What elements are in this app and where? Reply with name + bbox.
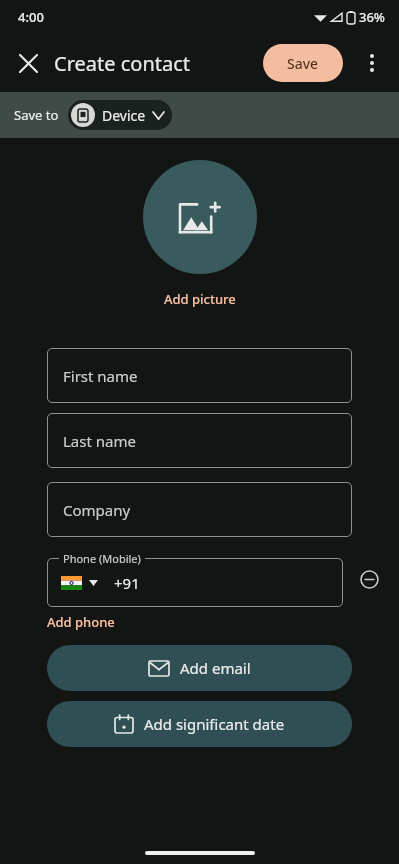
staticText: Add significant date bbox=[144, 714, 285, 734]
staticText: Create contact bbox=[54, 50, 191, 77]
staticText: Phone (Mobile) bbox=[63, 551, 141, 566]
button[interactable] bbox=[47, 558, 343, 607]
staticText: Device bbox=[102, 106, 146, 125]
button[interactable]: Add email bbox=[47, 645, 352, 691]
staticText: Save bbox=[287, 54, 319, 73]
button[interactable]: Add phone bbox=[47, 613, 115, 631]
button[interactable]: Add picture bbox=[164, 290, 236, 308]
staticText: Last name bbox=[63, 431, 136, 451]
staticText: Add email bbox=[180, 658, 251, 678]
button[interactable]: Device bbox=[68, 100, 172, 130]
button[interactable]: Last name bbox=[47, 413, 352, 468]
button[interactable]: Remove phone bbox=[353, 563, 385, 595]
staticText: First name bbox=[63, 366, 138, 386]
button[interactable]: Save bbox=[263, 44, 343, 82]
staticText: Company bbox=[63, 500, 131, 520]
staticText: +91 bbox=[114, 573, 140, 593]
staticText: 4:00 bbox=[18, 8, 44, 26]
staticText: 36% bbox=[359, 8, 385, 26]
button[interactable]: First name bbox=[47, 348, 352, 403]
button[interactable]: Close bbox=[8, 43, 48, 83]
button[interactable]: Company bbox=[47, 482, 352, 537]
button[interactable]: Add significant date bbox=[47, 701, 352, 747]
staticText: Save to bbox=[14, 106, 59, 124]
button[interactable]: Add picture bbox=[143, 160, 257, 274]
button[interactable]: More options bbox=[352, 43, 392, 83]
